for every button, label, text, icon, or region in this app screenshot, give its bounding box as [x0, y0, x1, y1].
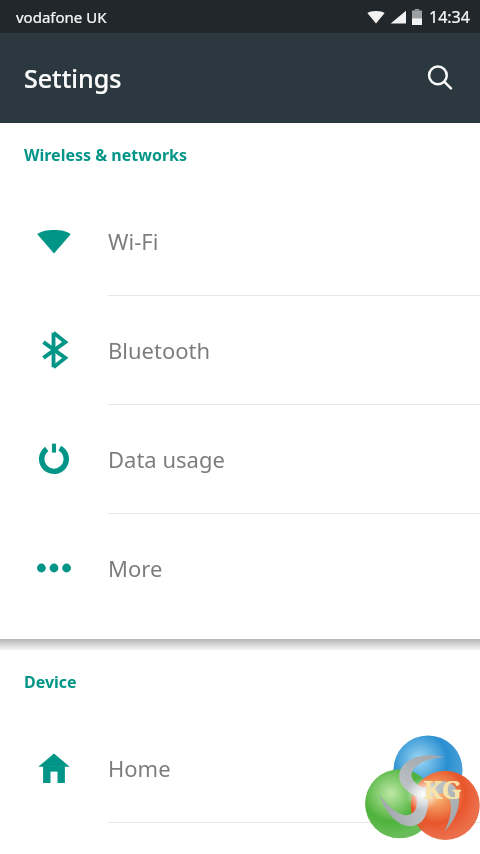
- staticText: Device: [24, 671, 77, 693]
- button[interactable]: Search: [414, 52, 466, 104]
- staticText: KG: [423, 771, 462, 806]
- staticText: Home: [108, 753, 171, 783]
- button[interactable]: More: [0, 514, 480, 622]
- staticText: Data usage: [108, 444, 225, 474]
- staticText: vodafone UK: [16, 7, 107, 27]
- staticText: Wi-Fi: [108, 226, 159, 256]
- button[interactable]: Wi-Fi: [0, 187, 480, 295]
- staticText: Settings: [24, 61, 122, 95]
- button[interactable]: Bluetooth: [0, 296, 480, 404]
- staticText: Wireless & networks: [24, 144, 188, 166]
- staticText: 14:34: [429, 6, 470, 28]
- staticText: More: [108, 553, 163, 583]
- button[interactable]: Home: [0, 714, 480, 822]
- button[interactable]: Data usage: [0, 405, 480, 513]
- staticText: Bluetooth: [108, 335, 211, 365]
